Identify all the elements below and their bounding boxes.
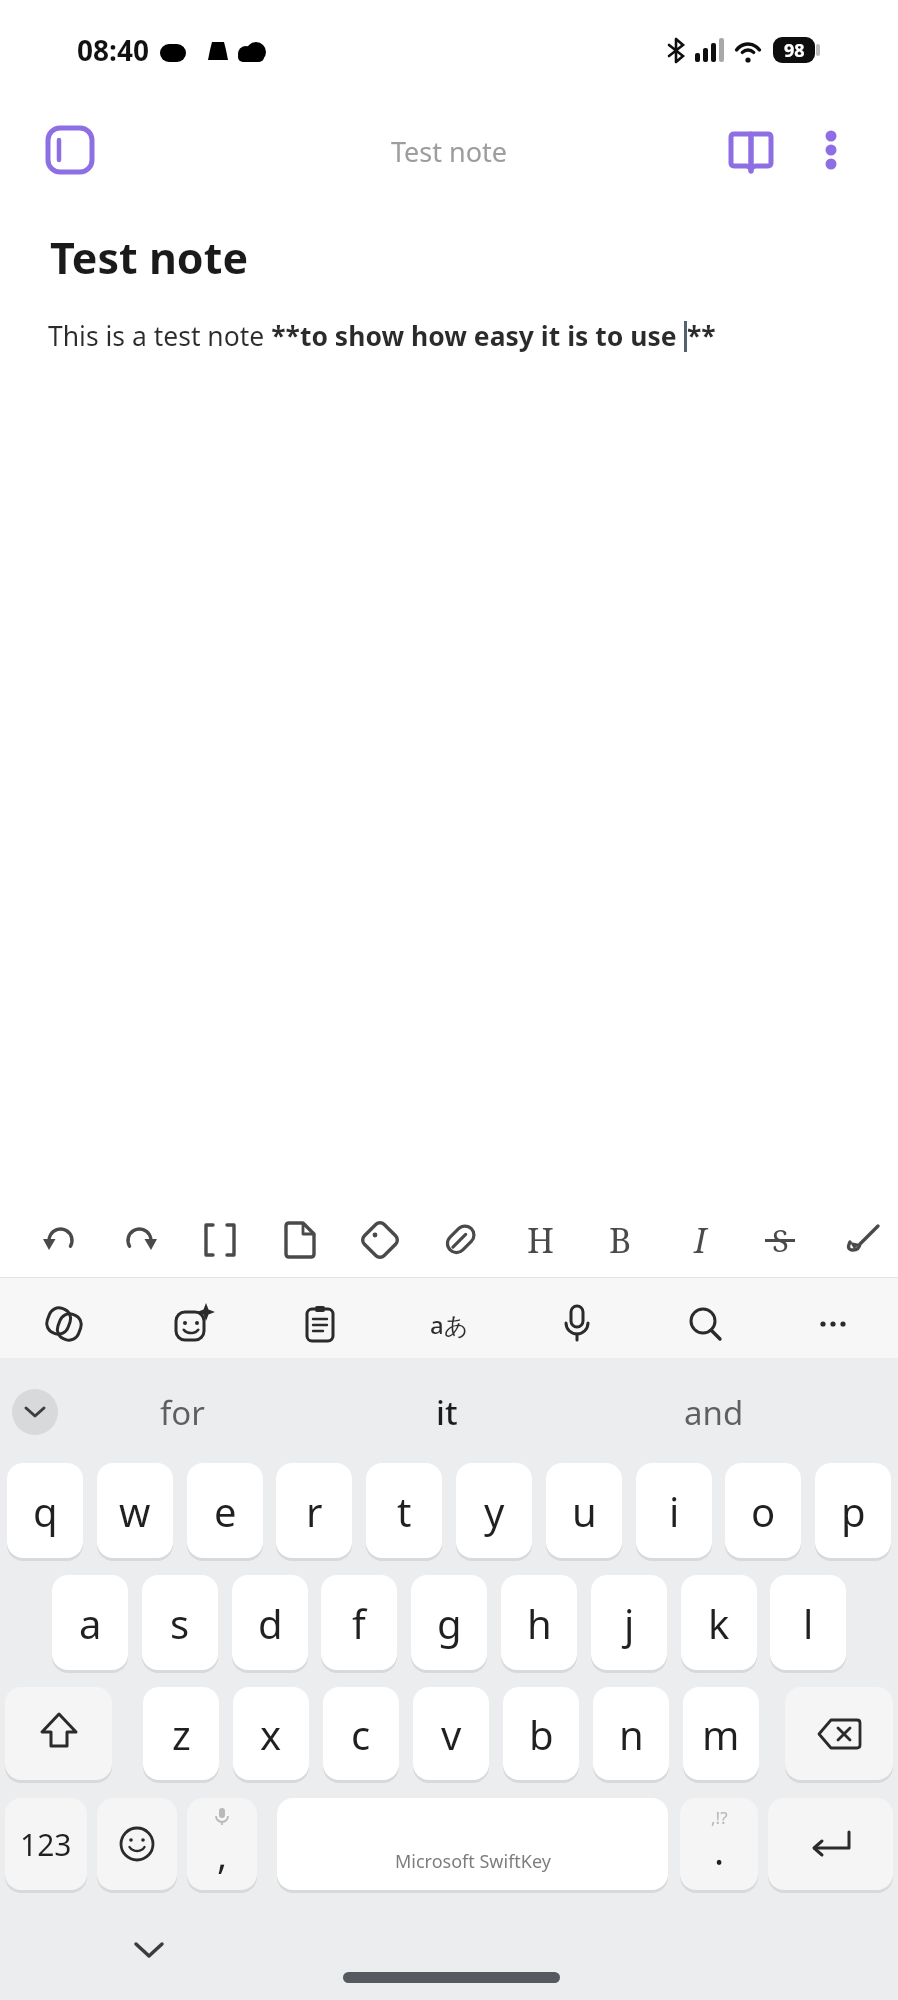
staticText: 123 <box>20 1824 72 1865</box>
staticText: aあ <box>430 1308 469 1341</box>
button[interactable]: , <box>187 1798 257 1890</box>
button[interactable]: f <box>321 1575 397 1670</box>
staticText: m <box>702 1707 740 1761</box>
staticText: q <box>33 1484 58 1538</box>
button[interactable] <box>809 1300 857 1348</box>
button[interactable]: a <box>52 1575 128 1670</box>
staticText: B <box>609 1217 632 1263</box>
button[interactable] <box>40 1300 88 1348</box>
staticText: I <box>694 1217 707 1263</box>
button[interactable]: c <box>323 1687 399 1780</box>
button[interactable] <box>196 1216 244 1264</box>
button[interactable] <box>36 1216 84 1264</box>
staticText: c <box>351 1707 371 1761</box>
button[interactable] <box>296 1300 344 1348</box>
button[interactable]: i <box>636 1463 712 1558</box>
button[interactable] <box>168 1300 216 1348</box>
staticText: x <box>260 1707 282 1761</box>
button[interactable] <box>436 1216 484 1264</box>
button[interactable]: z <box>143 1687 219 1780</box>
button[interactable]: l <box>770 1575 846 1670</box>
button[interactable]: u <box>546 1463 622 1558</box>
button[interactable]: m <box>683 1687 759 1780</box>
staticText: 98 <box>784 38 805 63</box>
staticText: Test note <box>50 228 249 287</box>
staticText: n <box>619 1707 644 1761</box>
button[interactable]: x <box>233 1687 309 1780</box>
button[interactable] <box>276 1216 324 1264</box>
button[interactable] <box>768 1798 893 1890</box>
button[interactable]: j <box>591 1575 667 1670</box>
staticText: e <box>214 1484 237 1538</box>
button[interactable]: b <box>503 1687 579 1780</box>
staticText: y <box>484 1484 505 1538</box>
button[interactable]: e <box>187 1463 263 1558</box>
staticText: . <box>714 1824 725 1876</box>
staticText: h <box>527 1596 552 1650</box>
staticText: i <box>669 1484 680 1538</box>
button[interactable]: g <box>411 1575 487 1670</box>
staticText: it <box>436 1390 458 1435</box>
button[interactable]: v <box>413 1687 489 1780</box>
staticText: S <box>772 1219 789 1261</box>
button[interactable] <box>116 1216 164 1264</box>
staticText: z <box>172 1707 191 1761</box>
button[interactable] <box>724 122 780 178</box>
button[interactable]: k <box>681 1575 757 1670</box>
staticText: a <box>79 1596 102 1650</box>
staticText: k <box>708 1596 730 1650</box>
staticText: for <box>160 1390 205 1435</box>
staticText: Microsoft SwiftKey <box>395 1849 551 1874</box>
button[interactable]: 123 <box>5 1798 87 1890</box>
staticText: l <box>803 1596 814 1650</box>
button[interactable]: q <box>7 1463 83 1558</box>
button[interactable] <box>785 1687 893 1780</box>
button[interactable] <box>681 1300 729 1348</box>
staticText: p <box>841 1484 866 1538</box>
staticText: r <box>306 1484 323 1538</box>
button[interactable] <box>810 122 854 178</box>
button[interactable]: h <box>501 1575 577 1670</box>
staticText: b <box>529 1707 554 1761</box>
staticText: Test note <box>391 133 508 170</box>
staticText: and <box>684 1390 744 1435</box>
staticText: H <box>527 1217 554 1263</box>
staticText: g <box>437 1596 462 1650</box>
staticText: This is a test note **to show how easy i… <box>48 318 684 354</box>
staticText: f <box>352 1596 366 1650</box>
button[interactable] <box>356 1216 404 1264</box>
button[interactable]: o <box>725 1463 801 1558</box>
button[interactable] <box>44 124 96 176</box>
button[interactable]: Microsoft SwiftKey <box>277 1798 668 1890</box>
staticText: v <box>441 1707 462 1761</box>
button[interactable]: ,!? <box>680 1798 758 1890</box>
button[interactable] <box>12 1389 58 1435</box>
button[interactable]: y <box>456 1463 532 1558</box>
staticText: j <box>624 1596 635 1650</box>
staticText: t <box>397 1484 412 1538</box>
button[interactable] <box>97 1798 177 1890</box>
button[interactable]: d <box>232 1575 308 1670</box>
button[interactable] <box>840 1216 888 1264</box>
staticText: ** <box>687 318 716 354</box>
button[interactable]: s <box>142 1575 218 1670</box>
staticText: d <box>258 1596 283 1650</box>
staticText: u <box>572 1484 597 1538</box>
button[interactable]: p <box>815 1463 891 1558</box>
staticText: ,!? <box>711 1806 728 1829</box>
button[interactable]: t <box>366 1463 442 1558</box>
button[interactable] <box>5 1687 112 1780</box>
staticText: , <box>217 1828 228 1880</box>
button[interactable] <box>553 1300 601 1348</box>
staticText: o <box>751 1484 776 1538</box>
staticText: 08:40 <box>77 31 149 69</box>
button[interactable]: r <box>276 1463 352 1558</box>
staticText: s <box>170 1596 190 1650</box>
button[interactable]: n <box>593 1687 669 1780</box>
button[interactable]: w <box>97 1463 173 1558</box>
staticText: w <box>119 1484 151 1538</box>
